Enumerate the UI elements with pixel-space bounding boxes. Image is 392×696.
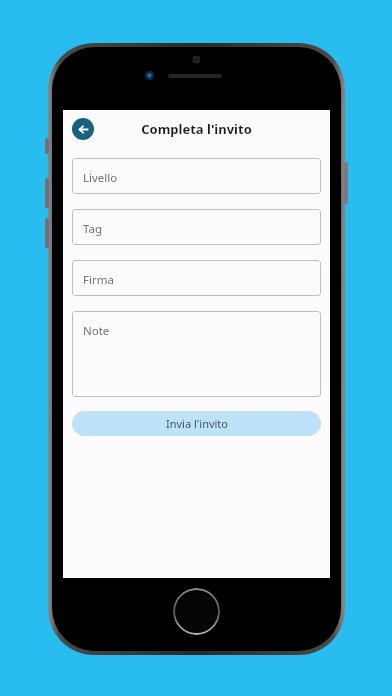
button[interactable]: Firma — [72, 260, 321, 296]
button[interactable]: Home — [173, 588, 220, 635]
button[interactable]: Livello — [72, 158, 321, 194]
staticText: Note — [83, 323, 110, 339]
staticText: Livello — [83, 170, 118, 186]
staticText: Invia l'invito — [166, 416, 228, 431]
button[interactable]: Note — [72, 311, 321, 397]
staticText: Firma — [83, 272, 114, 288]
button[interactable]: Invia l'invito — [72, 411, 321, 436]
button[interactable]: Back — [72, 118, 94, 140]
button[interactable]: Tag — [72, 209, 321, 245]
staticText: Completa l'invito — [141, 120, 252, 138]
staticText: Tag — [83, 221, 102, 237]
